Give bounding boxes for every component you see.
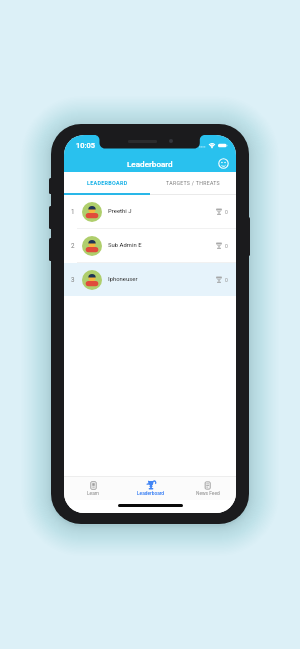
staticText: 10:05: [76, 141, 95, 150]
button[interactable]: LEADERBOARD: [64, 172, 150, 195]
staticText: Learn: [87, 491, 100, 497]
staticText: 0: [225, 209, 228, 215]
button[interactable]: Profile: [218, 158, 229, 169]
staticText: Iphoneuser: [108, 276, 138, 283]
button[interactable]: 2: [64, 229, 236, 262]
staticText: 2: [71, 242, 75, 249]
button[interactable]: 1: [64, 195, 236, 228]
button[interactable]: 3: [64, 263, 236, 296]
staticText: Sub Admin E: [108, 242, 142, 249]
staticText: 1: [71, 208, 75, 215]
staticText: Preethi J: [108, 208, 132, 215]
staticText: Leaderboard: [127, 159, 173, 168]
staticText: TARGETS / THREATS: [166, 180, 220, 186]
staticText: LEADERBOARD: [87, 180, 128, 186]
staticText: 0: [225, 243, 228, 249]
staticText: 3: [71, 276, 75, 283]
button[interactable]: Learn: [64, 477, 122, 500]
staticText: 0: [225, 277, 228, 283]
button[interactable]: News Feed: [179, 477, 236, 500]
staticText: News Feed: [196, 491, 220, 497]
staticText: Leaderboard: [137, 491, 165, 497]
button[interactable]: TARGETS / THREATS: [150, 172, 236, 195]
button[interactable]: Leaderboard: [122, 477, 179, 500]
